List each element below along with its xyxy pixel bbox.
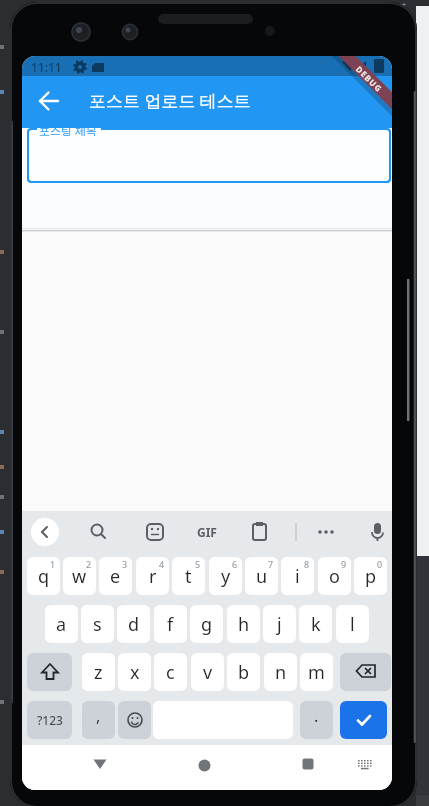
staticText: 8 <box>304 558 310 570</box>
staticText: v <box>203 660 213 685</box>
button[interactable]: j <box>263 605 296 643</box>
button[interactable]: z <box>82 653 115 691</box>
button[interactable]: g <box>190 605 223 643</box>
button[interactable]: l <box>336 605 369 643</box>
staticText: q <box>38 564 50 589</box>
button[interactable] <box>27 653 72 691</box>
button[interactable]: a <box>45 605 78 643</box>
staticText: 포스트 업로드 테스트 <box>89 89 251 112</box>
button[interactable] <box>340 653 391 691</box>
staticText: g <box>201 612 213 637</box>
button[interactable]: q <box>27 557 60 595</box>
staticText: p <box>365 564 377 589</box>
button[interactable]: v <box>191 653 224 691</box>
button[interactable]: m <box>300 653 333 691</box>
staticText: y <box>221 564 231 589</box>
staticText: o <box>329 564 340 589</box>
button[interactable]: , <box>82 701 115 739</box>
staticText: GIF <box>197 524 217 540</box>
staticText: w <box>72 564 87 589</box>
button[interactable]: p <box>354 557 387 595</box>
staticText: z <box>94 660 103 685</box>
staticText: 1 <box>50 558 56 570</box>
staticText: b <box>238 660 250 685</box>
button[interactable]: f <box>154 605 187 643</box>
button[interactable]: h <box>227 605 260 643</box>
staticText: 3 <box>122 558 128 570</box>
button[interactable] <box>27 128 391 183</box>
staticText: j <box>277 612 282 637</box>
staticText: k <box>311 612 321 637</box>
staticText: n <box>275 660 287 685</box>
button[interactable]: w <box>63 557 96 595</box>
button[interactable]: b <box>227 653 260 691</box>
button[interactable]: o <box>318 557 351 595</box>
button[interactable] <box>31 518 59 546</box>
button[interactable]: s <box>81 605 114 643</box>
button[interactable]: t <box>172 557 205 595</box>
button[interactable]: . <box>300 701 333 739</box>
button[interactable]: k <box>299 605 332 643</box>
staticText: . <box>314 705 319 727</box>
staticText: u <box>256 564 268 589</box>
staticText: f <box>167 612 174 637</box>
staticText: 9 <box>341 558 347 570</box>
button[interactable] <box>184 745 224 785</box>
staticText: 11:11 <box>31 59 62 75</box>
staticText: 2 <box>86 558 92 570</box>
button[interactable]: n <box>264 653 297 691</box>
staticText: e <box>110 564 121 589</box>
staticText: , <box>96 705 101 727</box>
staticText: h <box>238 612 250 637</box>
staticText: t <box>185 564 192 589</box>
button[interactable]: ?123 <box>27 701 72 739</box>
button[interactable] <box>80 744 120 784</box>
staticText: 0 <box>377 558 383 570</box>
button[interactable]: x <box>118 653 151 691</box>
staticText: a <box>56 612 67 637</box>
staticText: d <box>128 612 140 637</box>
staticText: c <box>166 660 175 685</box>
staticText: 포스팅 제목 <box>39 123 97 138</box>
button[interactable]: d <box>117 605 150 643</box>
staticText: m <box>308 660 325 685</box>
button[interactable]: y <box>209 557 242 595</box>
staticText: s <box>93 612 102 637</box>
button[interactable]: u <box>245 557 278 595</box>
staticText: i <box>295 564 300 589</box>
staticText: 4 <box>159 558 165 570</box>
button[interactable]: i <box>281 557 314 595</box>
button[interactable] <box>350 749 380 779</box>
button[interactable] <box>32 84 66 118</box>
staticText: r <box>149 564 157 589</box>
staticText: x <box>130 660 140 685</box>
button[interactable] <box>288 744 328 784</box>
button[interactable]: c <box>154 653 187 691</box>
staticText: 6 <box>232 558 238 570</box>
button[interactable]: r <box>136 557 169 595</box>
staticText: art <box>394 0 407 11</box>
button[interactable] <box>118 701 151 739</box>
staticText: ?123 <box>37 712 63 728</box>
staticText: 7 <box>268 558 274 570</box>
staticText: 5 <box>195 558 201 570</box>
button[interactable]: e <box>99 557 132 595</box>
button[interactable] <box>340 701 387 739</box>
staticText: l <box>350 612 355 637</box>
staticText: DEBUG <box>354 63 385 94</box>
